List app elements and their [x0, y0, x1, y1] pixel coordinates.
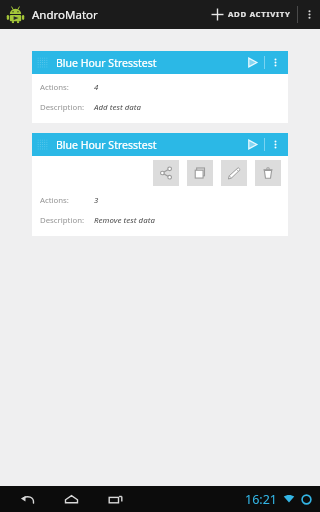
button[interactable]: Run activity	[241, 133, 264, 156]
button[interactable]: ADD ACTIVITY	[205, 0, 297, 29]
button[interactable]: Recent apps	[98, 486, 132, 512]
staticText: Add test data	[94, 102, 141, 113]
button[interactable]: Edit	[221, 160, 247, 186]
button[interactable]: Activity menu	[265, 133, 285, 156]
staticText: AndroMator	[32, 7, 98, 23]
staticText: 16:21	[245, 491, 277, 508]
button[interactable]: More options	[298, 0, 320, 29]
button[interactable]: Run activity	[241, 51, 264, 74]
staticText: ADD ACTIVITY	[228, 9, 291, 20]
staticText: Blue Hour Stresstest	[56, 138, 157, 152]
button[interactable]: Back	[10, 486, 44, 512]
staticText: Description:	[40, 215, 85, 226]
button[interactable]: Home	[54, 486, 88, 512]
staticText: Description:	[40, 102, 85, 113]
staticText: Remove test data	[94, 215, 155, 226]
staticText: Blue Hour Stresstest	[56, 56, 157, 70]
staticText: Actions:	[40, 82, 69, 93]
staticText: Actions:	[40, 195, 69, 206]
button[interactable]: Blue Hour Stresstest	[32, 133, 288, 236]
button[interactable]: Duplicate	[187, 160, 213, 186]
button[interactable]: Blue Hour Stresstest	[32, 51, 288, 123]
button[interactable]: Share	[153, 160, 179, 186]
button[interactable]: Activity menu	[265, 51, 285, 74]
staticText: 4	[94, 82, 99, 93]
staticText: 3	[94, 195, 99, 206]
button[interactable]: Delete	[255, 160, 281, 186]
